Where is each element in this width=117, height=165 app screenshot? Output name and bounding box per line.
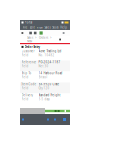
staticText: Qty 120 bbox=[38, 86, 49, 90]
staticText: Stock bbox=[52, 26, 58, 29]
staticText: Standard Freight bbox=[38, 93, 60, 97]
staticText: View bbox=[37, 26, 43, 29]
staticText: Reference bbox=[21, 60, 36, 64]
staticText: Field bbox=[21, 64, 28, 68]
staticText: Customer bbox=[21, 49, 34, 53]
staticText: 3-5 days bbox=[38, 97, 49, 101]
staticText: Sales bbox=[44, 26, 50, 29]
staticText: Edit bbox=[30, 26, 35, 29]
staticText: Field bbox=[21, 86, 28, 90]
staticText: Sales > Orders > New bbox=[27, 36, 53, 43]
staticText: Help bbox=[60, 26, 67, 29]
staticText: Item Code bbox=[21, 82, 36, 86]
staticText: No. 10482 bbox=[38, 53, 54, 57]
staticText: BX-9920 Crate bbox=[38, 82, 59, 86]
staticText: Field bbox=[21, 97, 28, 101]
staticText: Field bbox=[21, 53, 28, 57]
staticText: File bbox=[23, 26, 28, 29]
staticText: Portal bbox=[24, 21, 32, 24]
staticText: Delivery bbox=[21, 93, 32, 97]
staticText: PO-2024-1187 bbox=[38, 60, 60, 64]
staticText: Field bbox=[21, 75, 28, 79]
staticText: Ship To bbox=[21, 71, 31, 75]
staticText: Acme Trading Ltd bbox=[38, 49, 61, 53]
staticText: Net 30 bbox=[38, 64, 48, 68]
staticText: 14 Harbour Road bbox=[38, 71, 62, 75]
staticText: Bristol bbox=[38, 75, 47, 79]
staticText: Order Entry bbox=[24, 45, 40, 49]
